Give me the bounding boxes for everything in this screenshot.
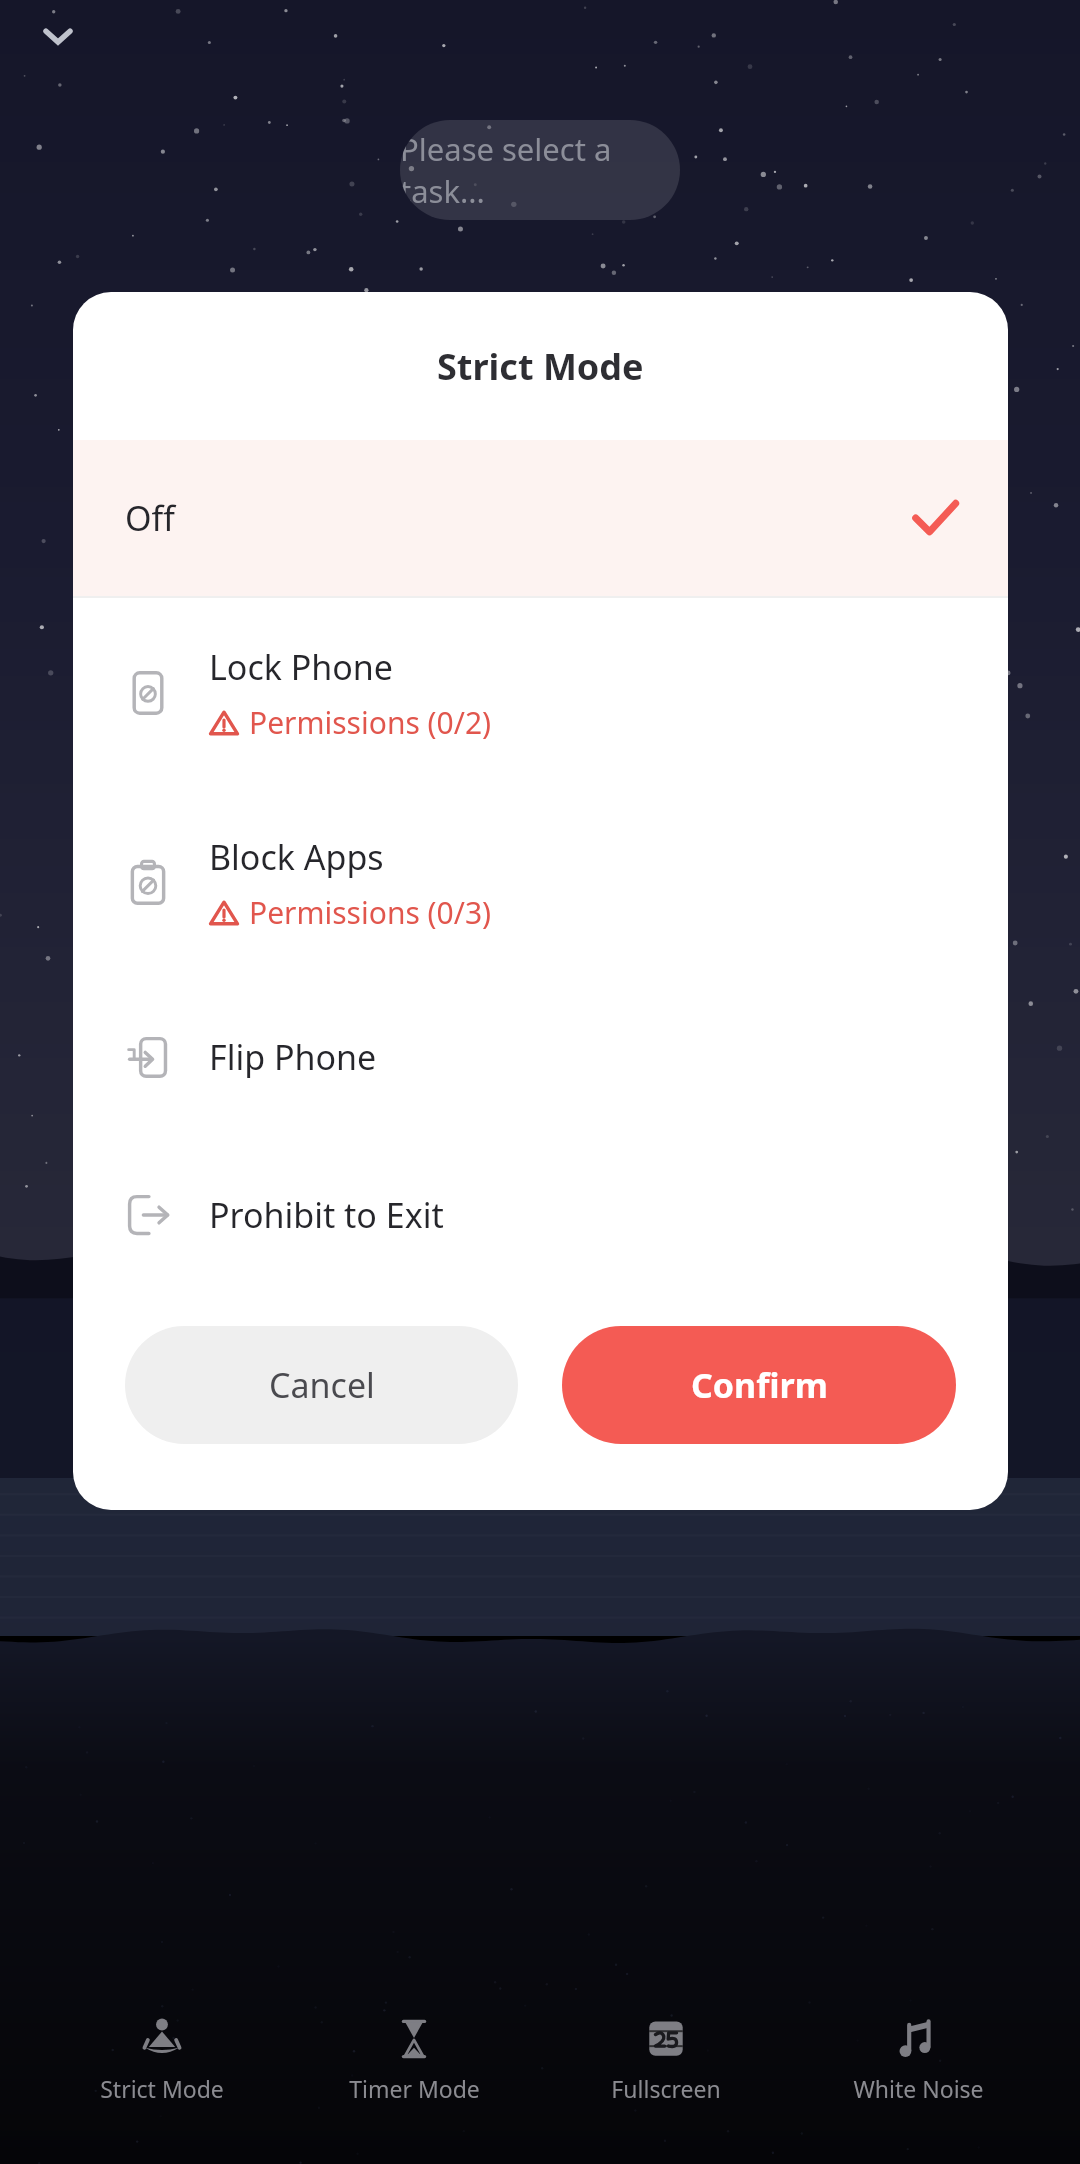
staticText: Lock Phone (209, 644, 394, 690)
button[interactable]: Lock Phone (73, 598, 1008, 788)
button[interactable]: Please select a task... (400, 120, 680, 220)
staticText: Timer Mode (349, 2073, 480, 2104)
button[interactable]: Confirm (562, 1326, 956, 1444)
button[interactable]: Cancel (125, 1326, 518, 1444)
staticText: Permissions (0/3) (249, 892, 492, 933)
button[interactable]: Collapse (30, 8, 86, 64)
button[interactable]: Timer Mode (324, 2011, 504, 2110)
staticText: Flip Phone (209, 1034, 377, 1080)
staticText: Strict Mode (437, 342, 644, 391)
staticText: Please select a task... (400, 128, 680, 212)
staticText: Permissions (0/2) (249, 702, 492, 743)
staticText: Confirm (691, 1362, 828, 1408)
button[interactable]: Strict Mode (72, 2011, 252, 2110)
button[interactable]: Prohibit to Exit (73, 1136, 1008, 1294)
staticText: Cancel (269, 1362, 375, 1408)
staticText: Block Apps (209, 834, 384, 880)
staticText: Off (125, 495, 175, 541)
button[interactable]: Block Apps (73, 788, 1008, 978)
staticText: Strict Mode (100, 2073, 224, 2104)
staticText: White Noise (853, 2073, 984, 2104)
staticText: Fullscreen (611, 2073, 721, 2104)
staticText: Prohibit to Exit (209, 1192, 444, 1238)
button[interactable]: White Noise (828, 2011, 1008, 2110)
button[interactable]: Off (73, 440, 1008, 596)
button[interactable]: Fullscreen (576, 2011, 756, 2110)
button[interactable]: Flip Phone (73, 978, 1008, 1136)
